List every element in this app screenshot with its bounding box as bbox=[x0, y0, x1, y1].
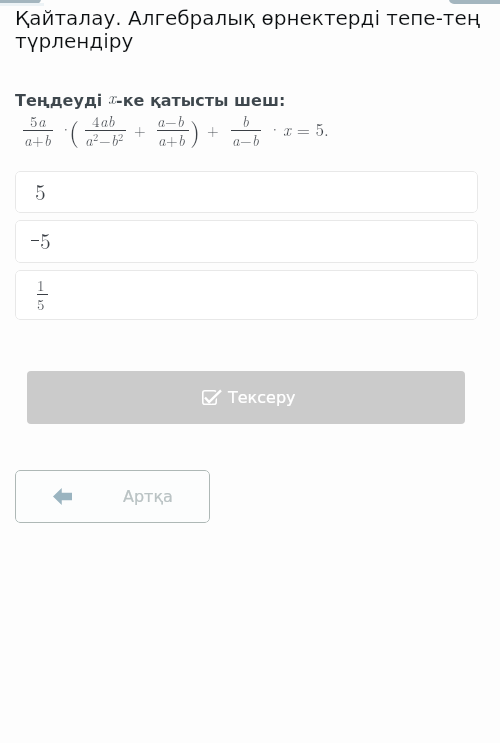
staticText: − bbox=[165, 110, 177, 131]
staticText: · bbox=[60, 118, 72, 139]
staticText: Қайталау. Алгебралық өрнектерді тепе-тең… bbox=[15, 6, 485, 53]
staticText: b bbox=[111, 129, 118, 150]
staticText: x bbox=[283, 117, 291, 141]
staticText: Тексеру bbox=[228, 388, 296, 407]
staticText: a bbox=[85, 129, 93, 150]
staticText: 5 bbox=[40, 225, 51, 255]
staticText: ) bbox=[190, 112, 201, 149]
button[interactable]: 5 bbox=[15, 171, 478, 213]
staticText: a bbox=[232, 129, 240, 150]
staticText: a bbox=[24, 129, 32, 150]
other: Back bbox=[53, 488, 72, 505]
staticText: + bbox=[166, 129, 178, 150]
staticText: Теңдеуді bbox=[15, 91, 108, 110]
staticText: b bbox=[252, 129, 259, 150]
staticText: -ке қатысты шеш: bbox=[116, 91, 286, 110]
staticText: 4 bbox=[92, 110, 100, 131]
staticText: − bbox=[240, 129, 252, 150]
staticText: ab bbox=[100, 110, 115, 131]
staticText: a bbox=[157, 110, 165, 131]
staticText: 2 bbox=[118, 129, 124, 144]
staticText: b bbox=[177, 110, 184, 131]
staticText: − bbox=[99, 129, 111, 150]
staticText: 2 bbox=[93, 129, 99, 144]
staticText: · bbox=[269, 118, 281, 139]
staticText: b bbox=[242, 110, 249, 131]
staticText: 5 bbox=[35, 176, 46, 206]
staticText: = 5. bbox=[291, 117, 329, 141]
staticText: 5 bbox=[37, 293, 45, 314]
staticText: Артқа bbox=[123, 487, 173, 506]
staticText: x bbox=[108, 85, 116, 109]
button[interactable]: Back bbox=[15, 470, 210, 523]
staticText: + bbox=[207, 119, 219, 140]
button[interactable]: 1 bbox=[15, 270, 478, 320]
staticText: + bbox=[134, 119, 146, 140]
staticText: a bbox=[158, 129, 166, 150]
staticText: b bbox=[44, 129, 51, 150]
button[interactable]: 5 bbox=[15, 220, 478, 263]
staticText: b bbox=[178, 129, 185, 150]
staticText: ( bbox=[69, 112, 80, 149]
staticText: + bbox=[32, 129, 44, 150]
staticText: 5 bbox=[30, 110, 38, 131]
staticText: a bbox=[38, 110, 46, 131]
button[interactable]: Тексеру bbox=[27, 371, 465, 424]
staticText: 1 bbox=[37, 274, 45, 295]
